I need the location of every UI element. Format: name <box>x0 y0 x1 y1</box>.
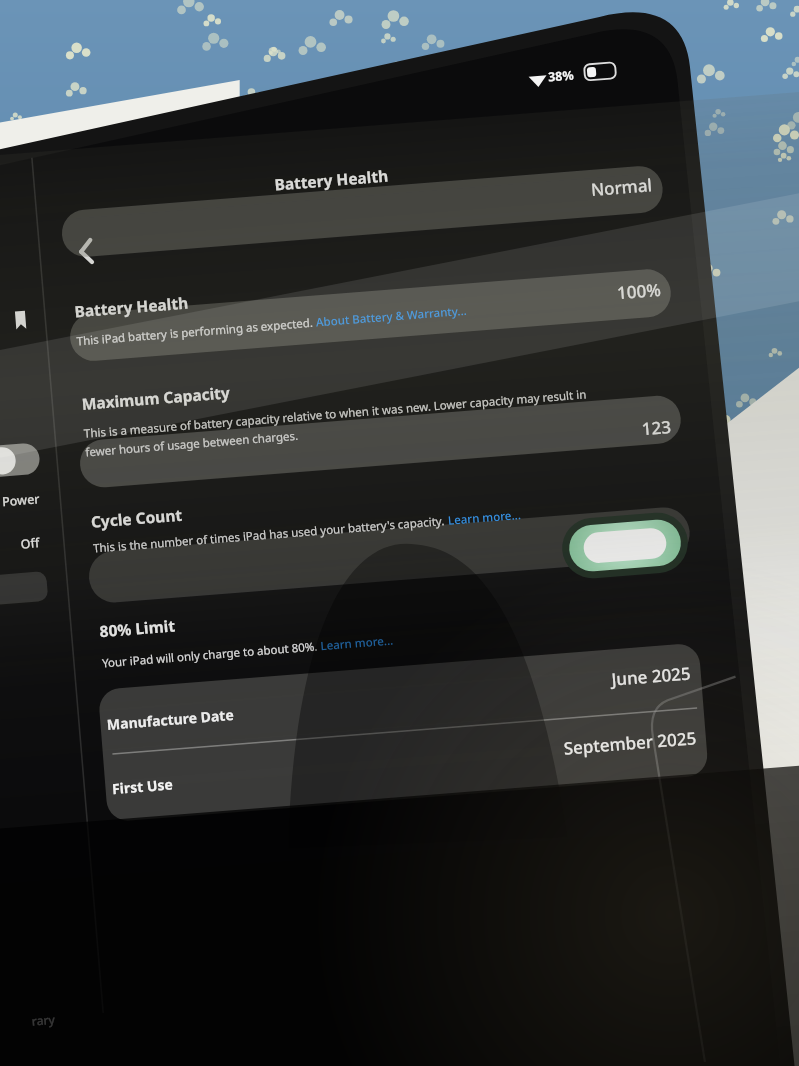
button[interactable]: Cycle Count, 123 <box>83 463 706 561</box>
button[interactable]: First Use, September 2025 <box>83 731 706 793</box>
button[interactable]: Manufacture Date, June 2025 <box>83 669 706 731</box>
button[interactable]: Maximum Capacity, 100 percent <box>83 360 706 458</box>
button[interactable]: Back <box>75 200 147 260</box>
button[interactable]: 80 percent Limit toggle <box>83 542 706 646</box>
button[interactable]: Battery Health, Normal <box>83 264 706 356</box>
